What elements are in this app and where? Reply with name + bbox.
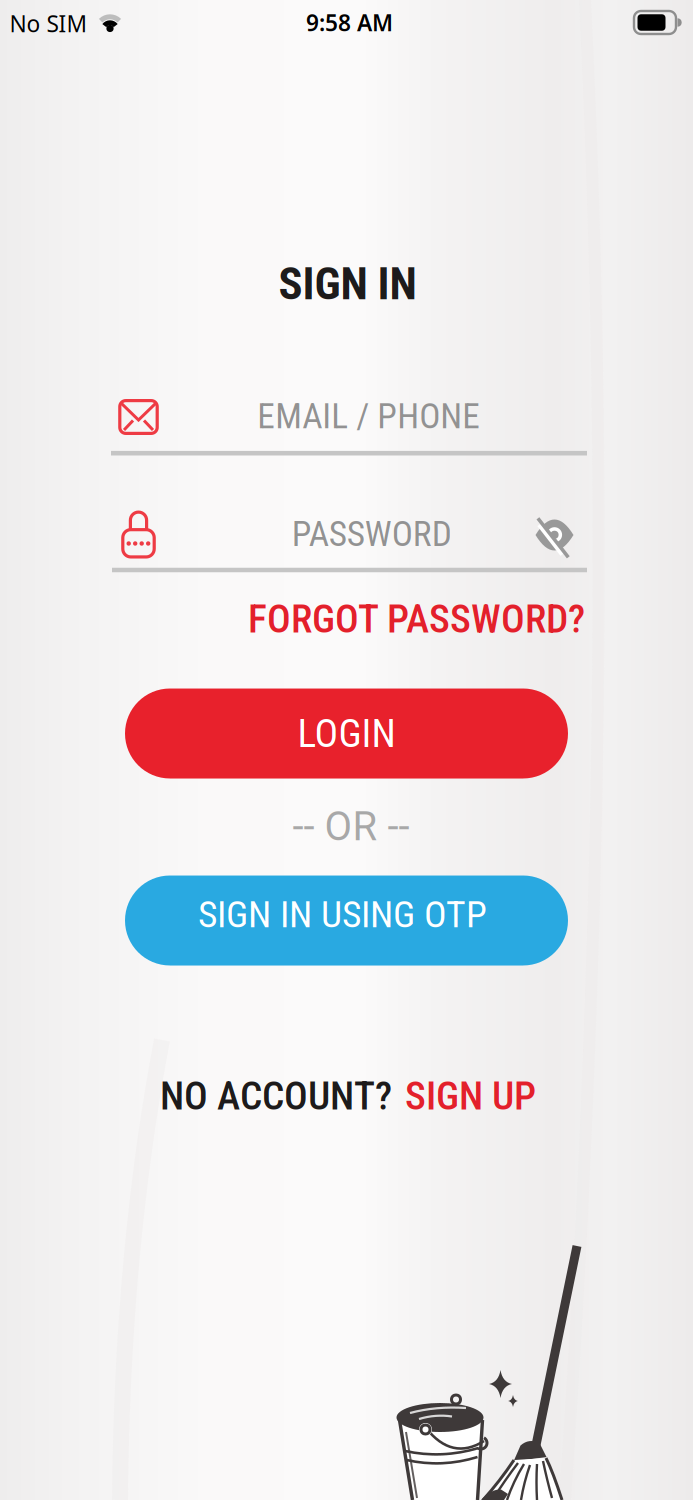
staticText: 9:58 AM [306, 7, 393, 37]
staticText: -- OR -- [292, 803, 409, 850]
staticText: NO ACCOUNT? [160, 1073, 392, 1119]
button[interactable]: FORGOT PASSWORD? [248, 596, 585, 642]
staticText: SIGN IN USING OTP [198, 892, 487, 937]
button[interactable]: SIGN UP [405, 1073, 536, 1119]
staticText: SIGN UP [405, 1073, 536, 1119]
button[interactable]: SIGN IN USING OTP [125, 875, 568, 965]
staticText: SIGN IN [278, 258, 416, 310]
button[interactable]: LOGIN [125, 688, 568, 778]
button[interactable]: Password [99, 498, 599, 584]
staticText: FORGOT PASSWORD? [248, 596, 585, 642]
staticText: PASSWORD [292, 513, 452, 555]
button[interactable]: Show password [530, 511, 578, 559]
staticText: EMAIL / PHONE [257, 395, 480, 437]
staticText: LOGIN [297, 710, 395, 757]
staticText: No SIM [9, 8, 87, 38]
button[interactable]: Email / Phone [99, 381, 599, 467]
